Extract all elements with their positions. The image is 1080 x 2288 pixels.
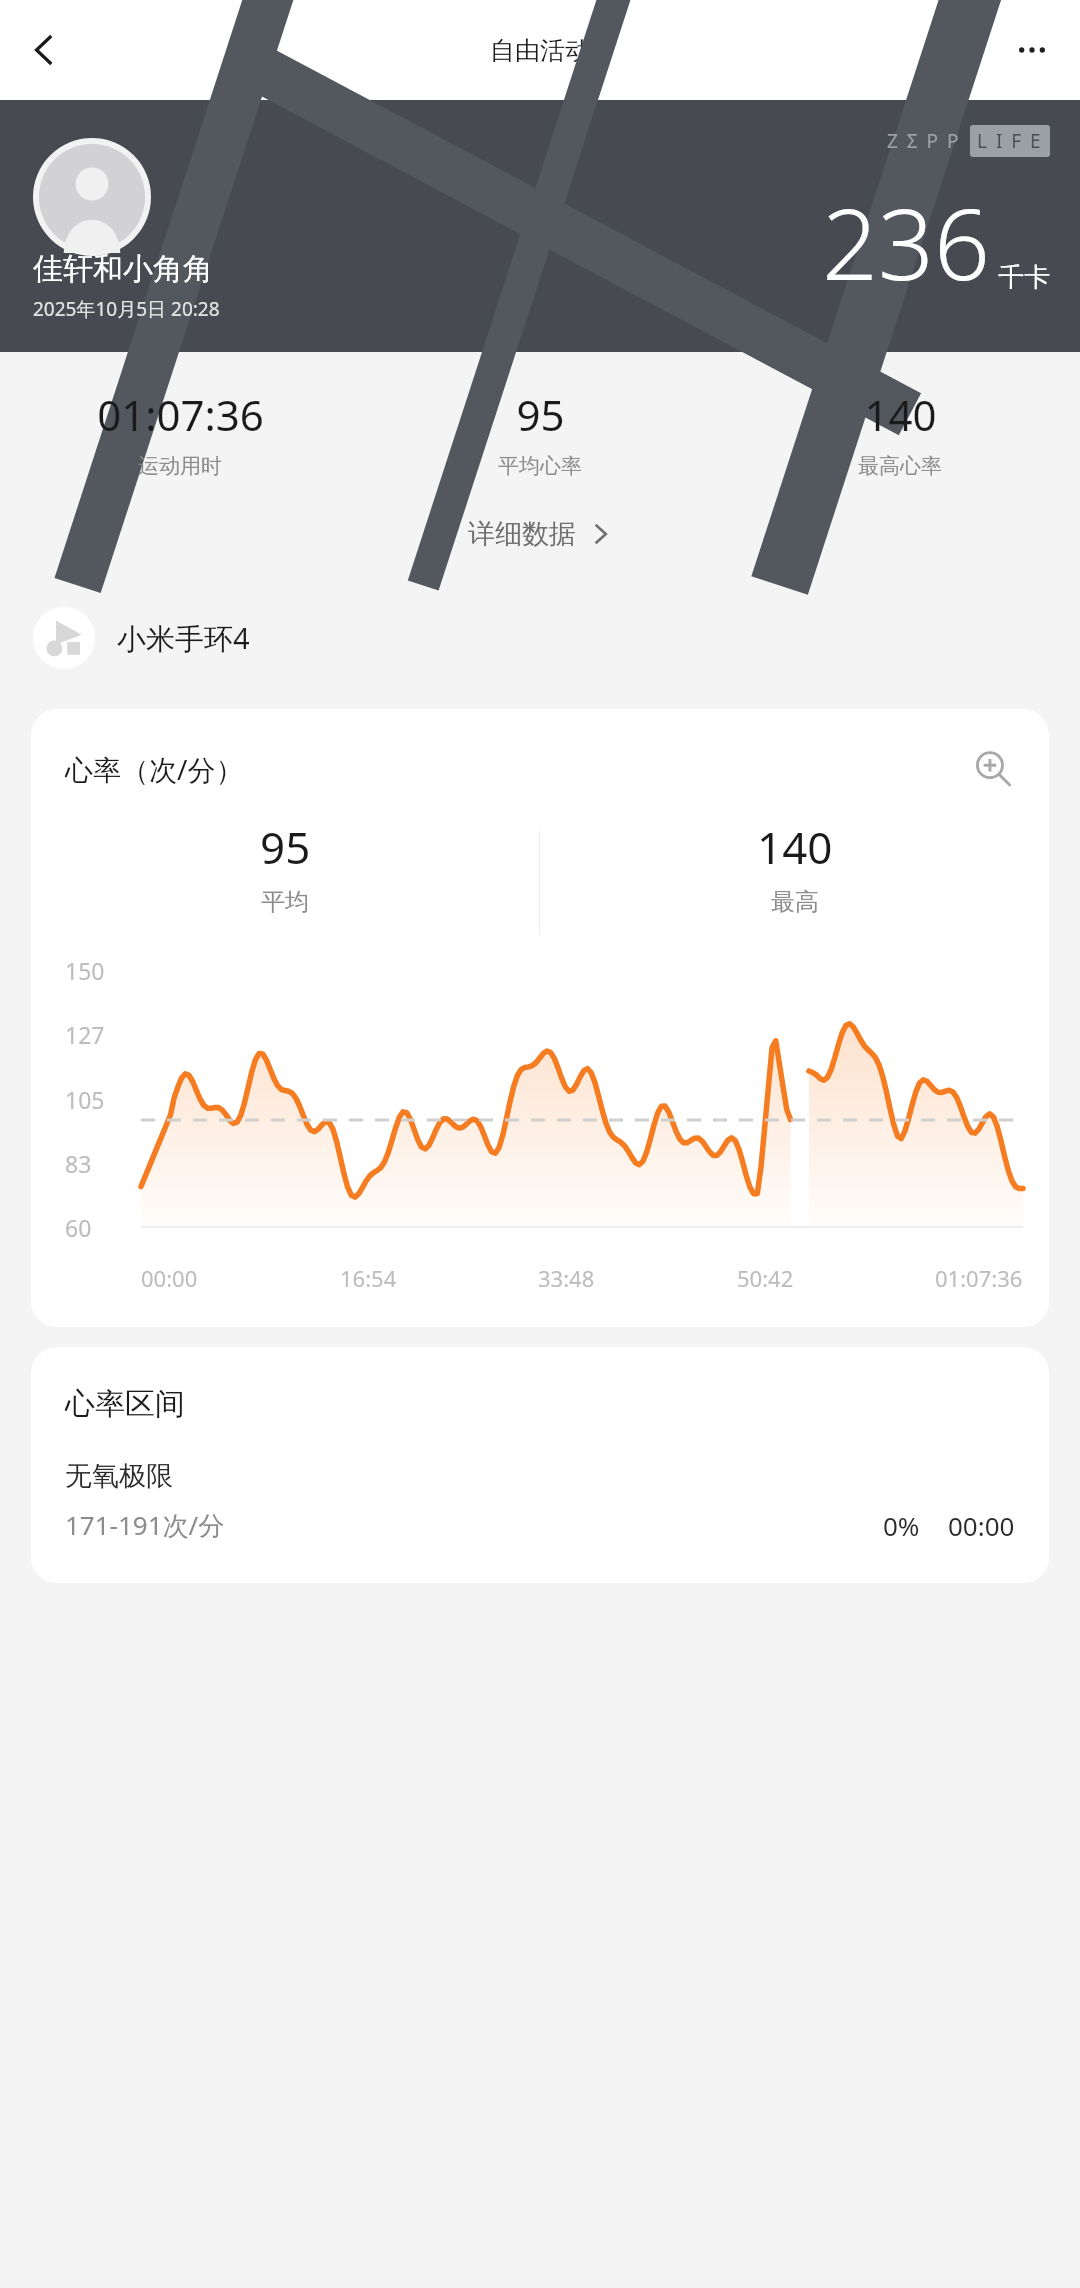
button[interactable]: Back	[8, 14, 80, 86]
staticText: 心率区间	[65, 1385, 185, 1423]
staticText: 60	[65, 1212, 92, 1243]
staticText: 50:42	[737, 1263, 794, 1293]
staticText: 01:07:36	[97, 386, 264, 443]
staticText: 127	[65, 1019, 105, 1050]
button[interactable]: 小米手环4	[33, 603, 1080, 673]
staticText: 最高	[771, 887, 819, 917]
staticText: 最高心率	[858, 453, 942, 479]
staticText: 佳轩和小角角	[33, 250, 213, 288]
staticText: 140	[757, 817, 833, 877]
staticText: 00:00	[948, 1508, 1015, 1543]
staticText: 运动用时	[138, 453, 222, 479]
button[interactable]: Zoom in chart	[967, 743, 1019, 795]
button[interactable]: More options	[996, 14, 1068, 86]
staticText: 0%	[883, 1508, 920, 1543]
staticText: 95	[260, 817, 311, 877]
staticText: 无氧极限	[65, 1459, 173, 1493]
staticText: 33:48	[538, 1263, 595, 1293]
staticText: 小米手环4	[117, 618, 250, 658]
staticText: 236	[822, 175, 990, 308]
staticText: 95	[516, 386, 565, 443]
staticText: 00:00	[141, 1263, 198, 1293]
button[interactable]: 详细数据	[444, 507, 636, 561]
staticText: 140	[864, 386, 937, 443]
staticText: 详细数据	[468, 517, 576, 551]
staticText: 01:07:36	[935, 1263, 1023, 1293]
staticText: 心率（次/分）	[65, 750, 244, 788]
staticText: 自由活动	[490, 35, 590, 66]
staticText: 105	[65, 1084, 105, 1115]
staticText: 150	[65, 955, 105, 986]
staticText: 171-191次/分	[65, 1507, 225, 1543]
staticText: 2025年10月5日 20:28	[33, 296, 220, 322]
staticText: 平均心率	[498, 453, 582, 479]
staticText: L I F E	[977, 128, 1043, 154]
staticText: 83	[65, 1148, 92, 1179]
staticText: 平均	[261, 887, 309, 917]
staticText: 16:54	[340, 1263, 397, 1293]
staticText: 千卡	[998, 261, 1050, 294]
staticText: Z Σ P P	[887, 128, 961, 154]
